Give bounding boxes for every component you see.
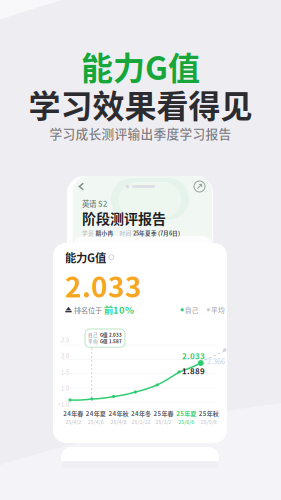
staticText: 时间 <box>119 229 131 237</box>
staticText: 25/4/2 <box>65 418 81 426</box>
staticText: 24年秋 <box>108 409 128 418</box>
staticText: 阶段测评报告 <box>82 208 166 228</box>
staticText: 排名位于 <box>72 304 104 315</box>
staticText: G值 2.033 <box>100 331 122 338</box>
staticText: <1.0 <box>58 400 69 408</box>
staticText: 1.0 <box>61 384 69 392</box>
staticText: 自己 <box>88 331 98 338</box>
staticText: 2.366 <box>207 356 225 366</box>
staticText: 能力G值 <box>65 249 106 265</box>
staticText: 1.889 <box>182 365 205 377</box>
staticText: 1.5 <box>61 368 69 376</box>
staticText: 自己 <box>184 305 199 315</box>
staticText: 25年春 <box>154 409 174 418</box>
staticText: 25/4/6 <box>88 418 104 426</box>
staticText: 25/9/8 <box>201 418 217 426</box>
staticText: 2.5 <box>61 336 69 344</box>
staticText: 学习成长测评输出季度学习报告 <box>49 124 231 142</box>
staticText: 平均 <box>210 305 225 315</box>
staticText: 期小冉 <box>95 229 113 237</box>
staticText: 2.033 <box>182 350 205 362</box>
button[interactable]: Share <box>193 180 206 193</box>
staticText: 2.0 <box>61 352 69 360</box>
staticText: 24年春 <box>63 409 83 418</box>
staticText: 25/4/8 <box>110 418 126 426</box>
staticText: 24年夏 <box>86 409 106 418</box>
staticText: 平均 <box>88 338 98 345</box>
staticText: 学习效果看得见 <box>28 81 252 127</box>
staticText: 英语 S2 <box>82 198 107 209</box>
staticText: G值 1.587 <box>100 338 122 345</box>
button[interactable]: Back <box>75 180 88 193</box>
staticText: 25年夏季 (7月6日) <box>133 229 180 237</box>
staticText: 前10% <box>104 303 134 316</box>
staticText: 能力G值 <box>81 43 200 89</box>
staticText: 25/6/6 <box>178 418 194 426</box>
staticText: 2.033 <box>65 265 142 305</box>
staticText: 25年夏 <box>176 409 196 418</box>
staticText: 25年秋 <box>199 409 219 418</box>
staticText: 25/3/2 <box>156 418 172 426</box>
staticText: 24年冬 <box>131 409 151 418</box>
staticText: 学员 <box>82 229 94 237</box>
staticText: 25/1/12 <box>131 418 150 426</box>
